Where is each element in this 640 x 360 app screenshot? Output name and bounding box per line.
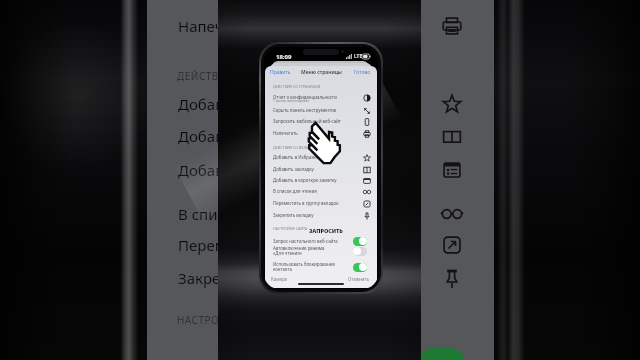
staticText: 18:09 (276, 53, 292, 61)
staticText: Камера (271, 276, 288, 282)
staticText: ЗАПРОСИТЬ (309, 227, 343, 235)
staticText: Закрепить вкладку (273, 212, 314, 218)
button[interactable]: Запрос настольного веб-сайта (265, 236, 377, 247)
staticText: Добавить закладку (273, 166, 314, 172)
button[interactable]: Напечатать (265, 128, 377, 139)
staticText: Переместить в группу вкладок (273, 200, 339, 206)
staticText: Переместить в группу вкладок (178, 235, 402, 255)
button[interactable]: Добавить в короткую заметку (265, 175, 377, 186)
staticText: «Для чтения» (273, 250, 303, 256)
staticText: 1 трекер заблокирован (273, 99, 310, 103)
staticText: Напечатать (178, 16, 263, 36)
staticText: контакта (273, 266, 292, 272)
staticText: Запрос настольного веб-сайта (273, 238, 338, 244)
button[interactable]: Закрепить вкладку (265, 210, 377, 221)
button[interactable]: Переместить в группу вкладок (265, 198, 377, 209)
staticText: Добавить в короткую заметку (273, 177, 337, 183)
staticText: Меню страницы (301, 69, 342, 76)
button[interactable]: Править (270, 69, 291, 76)
staticText: НАСТРОЙКИ (177, 313, 243, 327)
button[interactable]: Автовключение режима (265, 244, 377, 258)
button[interactable]: Использовать блокирование (265, 260, 377, 274)
staticText: ДЕЙСТВИЯ СО СТРАНИЦЕЙ (273, 84, 321, 89)
button[interactable]: Запросить мобильный веб-сайт (265, 116, 377, 127)
staticText: ДЕЙСТВИЯ СО ВКЛАДКОЙ (177, 69, 314, 83)
staticText: Добавить в Избранное (178, 94, 345, 114)
staticText: Автовключение режима (273, 245, 325, 251)
staticText: В список для чтения (273, 188, 317, 194)
staticText: ДЕЙСТВИЯ СО ВКЛАДКОЙ (273, 145, 319, 150)
button[interactable]: Отчет о конфиденциальности (265, 92, 377, 103)
staticText: Добавить в короткую заметку (178, 160, 396, 180)
staticText: Использовать блокирование (273, 261, 335, 267)
staticText: Закрепить вкладку (178, 268, 317, 288)
button[interactable]: Напечатать (147, 0, 494, 360)
button[interactable]: Скрыть панель инструментов (265, 105, 377, 116)
button[interactable]: В список для чтения (265, 186, 377, 197)
staticText: В список для чтения (178, 204, 328, 224)
staticText: Отменить (348, 276, 370, 282)
staticText: Добавить в Избранное (273, 154, 322, 160)
staticText: Добавить закладку (178, 126, 318, 146)
staticText: НАСТРОЙКИ САЙТА (273, 226, 308, 231)
button[interactable]: Добавить в Избранное (265, 152, 377, 163)
staticText: LTE (354, 53, 363, 60)
staticText: Напечатать (273, 130, 298, 136)
button[interactable]: Готово (354, 69, 371, 76)
staticText: Запросить мобильный веб-сайт (273, 118, 341, 124)
staticText: Отчет о конфиденциальности (273, 94, 337, 100)
button[interactable]: Добавить закладку (265, 164, 377, 175)
staticText: Скрыть панель инструментов (273, 107, 337, 113)
